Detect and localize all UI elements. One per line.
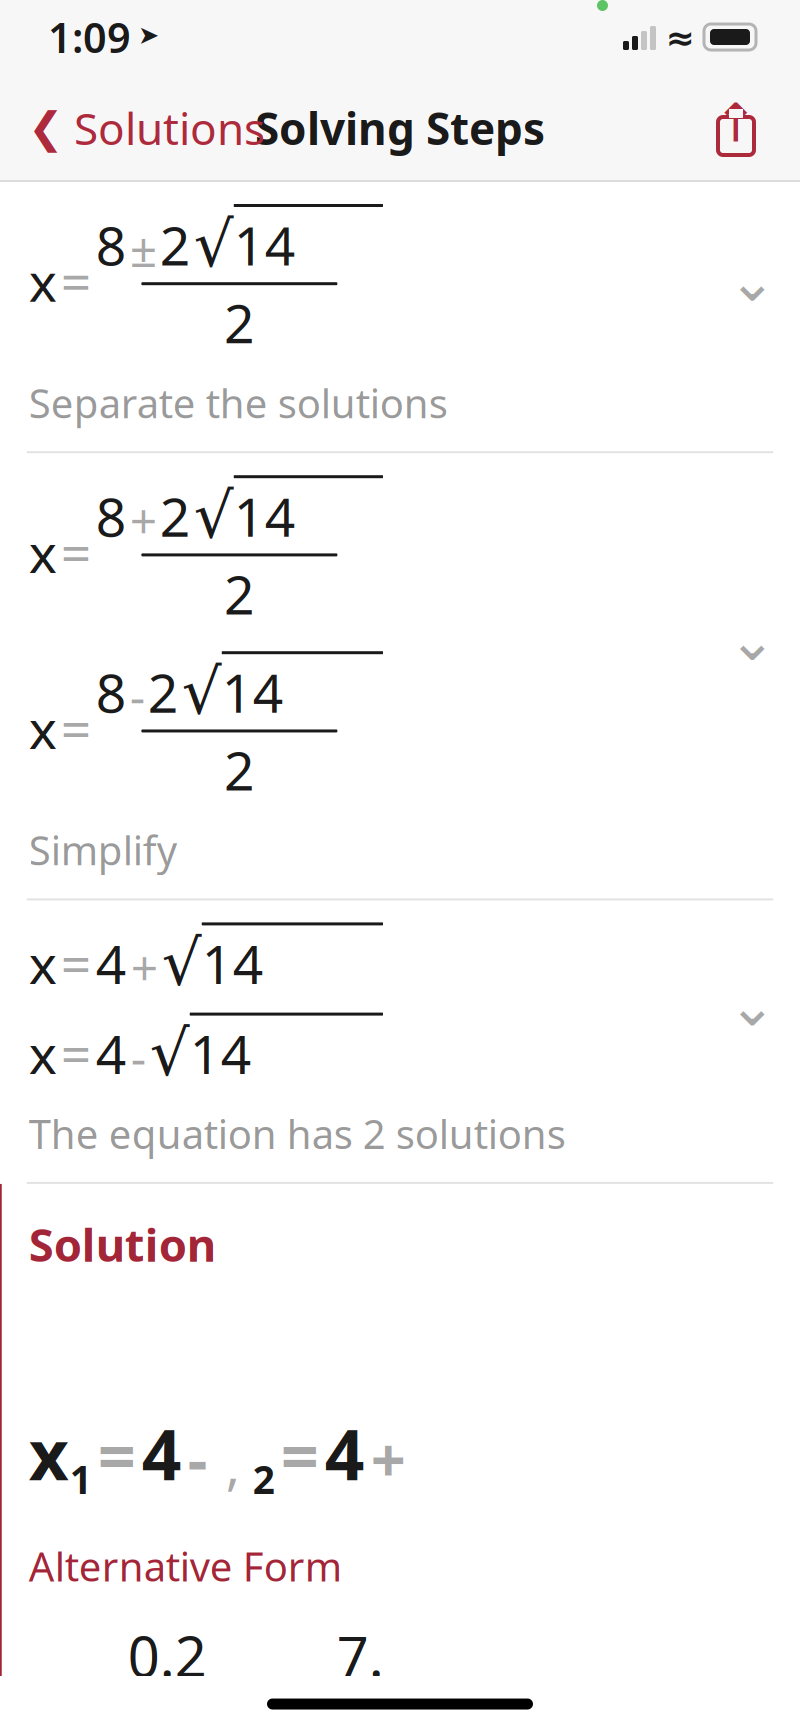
staticText: ± (130, 216, 157, 280)
staticText: - (130, 664, 145, 727)
staticText: Separate the solutions (29, 376, 448, 429)
staticText: 14 (234, 481, 296, 551)
staticText: = (61, 246, 92, 316)
button[interactable]: Share (694, 91, 778, 165)
staticText: √ (194, 480, 234, 551)
staticText: 8 (96, 657, 127, 727)
staticText: - (131, 1025, 146, 1089)
staticText: 8 (96, 209, 127, 280)
staticText: √ (150, 1018, 190, 1089)
staticText: = (61, 693, 92, 764)
staticText: 4 (96, 1018, 127, 1089)
staticText: x (29, 517, 57, 588)
staticText: ⌄ (728, 973, 776, 1038)
staticText: 2 (148, 657, 179, 727)
staticText: ↑ (713, 93, 758, 153)
staticText: Solution (29, 1214, 216, 1274)
staticText: 2 (253, 1453, 275, 1505)
staticText: 2 (160, 481, 191, 551)
staticText: 0.258343 (128, 1618, 207, 1732)
staticText: ≈ (665, 18, 694, 58)
button[interactable]: x (0, 900, 800, 1182)
staticText: Solutions (74, 99, 265, 157)
staticText: ➤ (138, 21, 159, 49)
staticText: 14 (234, 209, 296, 280)
staticText: √ (182, 656, 222, 727)
staticText: The equation has 2 solutions (29, 1107, 566, 1160)
staticText: √ (194, 209, 234, 280)
staticText: Alternative Form (29, 1539, 342, 1592)
staticText: - (188, 1418, 208, 1499)
staticText: 2 (224, 558, 255, 629)
staticText: 7.74166 (337, 1618, 401, 1732)
staticText: 1:09 (48, 10, 131, 64)
staticText: 14 (222, 657, 284, 727)
button[interactable]: x (0, 182, 800, 451)
staticText: 2 (160, 209, 191, 280)
staticText: , (226, 1429, 240, 1499)
staticText: x (29, 928, 57, 999)
staticText: 2 (224, 734, 255, 805)
staticText: 8 (96, 481, 127, 551)
staticText: = (61, 517, 92, 588)
staticText: 2 (224, 287, 255, 358)
staticText: Solving Steps (255, 99, 545, 157)
staticText: + (130, 488, 157, 551)
staticText: = (61, 1018, 92, 1089)
staticText: 14 (190, 1018, 252, 1089)
staticText: Simplify (29, 823, 177, 876)
staticText: = (61, 928, 92, 999)
staticText: x (29, 1407, 69, 1499)
staticText: x (29, 1018, 57, 1089)
staticText: + (131, 935, 158, 999)
staticText: 14 (202, 928, 264, 999)
staticText: √ (162, 927, 202, 999)
staticText: ⌄ (728, 608, 776, 673)
staticText: 4 (325, 1407, 365, 1499)
staticText: 4 (142, 1407, 182, 1499)
staticText: ⌄ (728, 248, 776, 314)
button[interactable]: ❮ (8, 87, 285, 169)
button[interactable]: x (0, 453, 800, 898)
staticText: 4 (96, 928, 127, 999)
staticText: ❮ (28, 104, 64, 152)
staticText: 1 (70, 1453, 92, 1505)
staticText: x (29, 693, 57, 764)
staticText: = (281, 1411, 319, 1499)
staticText: + (371, 1418, 406, 1499)
staticText: = (98, 1411, 136, 1499)
staticText: x (29, 246, 57, 316)
